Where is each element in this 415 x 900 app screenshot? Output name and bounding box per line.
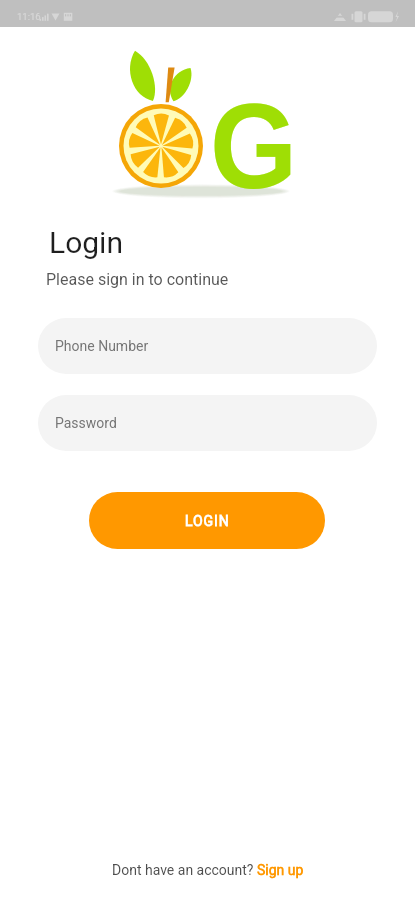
staticText: 11:16: [17, 11, 41, 22]
staticText: Please sign in to continue: [46, 270, 229, 289]
button[interactable]: LOGIN: [89, 492, 325, 549]
button[interactable]: Phone Number: [38, 318, 377, 374]
staticText: G: [210, 79, 298, 213]
other: Status bar: [0, 0, 415, 27]
staticText: Phone Number: [55, 338, 149, 354]
staticText: Dont have an account?: [112, 862, 257, 878]
button[interactable]: Password: [38, 395, 377, 451]
staticText: LOGIN: [185, 513, 230, 529]
staticText: Login: [49, 225, 123, 260]
staticText: Sign up: [257, 862, 304, 878]
button[interactable]: Sign up: [257, 862, 304, 878]
staticText: Password: [55, 415, 117, 431]
